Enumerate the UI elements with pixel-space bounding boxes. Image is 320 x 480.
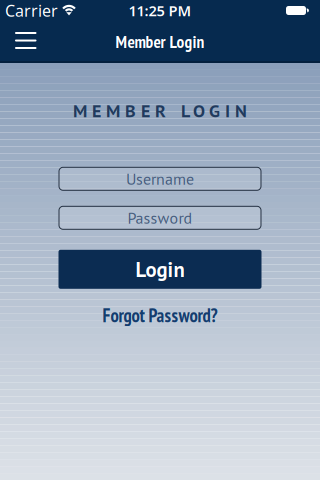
textField[interactable]: Username: [58, 167, 261, 191]
button[interactable]: Forgot Password?: [102, 303, 217, 327]
staticText: Carrier: [5, 0, 58, 21]
staticText: Login: [135, 256, 184, 283]
staticText: Member Login: [115, 30, 204, 53]
button[interactable]: Login: [58, 250, 261, 289]
staticText: M E M B E R L O G I N: [73, 99, 247, 122]
textField[interactable]: Password: [58, 206, 261, 230]
staticText: 11:25 PM: [128, 1, 191, 20]
staticText: Forgot Password?: [102, 303, 217, 327]
button[interactable]: Menu: [0, 20, 48, 61]
staticText: Password: [127, 207, 192, 228]
staticText: Username: [126, 168, 194, 189]
